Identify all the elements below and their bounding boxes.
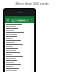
button[interactable]: Search cards bbox=[11, 19, 29, 22]
button[interactable] bbox=[5, 55, 34, 59]
staticText: More than 500 cards bbox=[15, 1, 49, 6]
button[interactable] bbox=[5, 43, 34, 47]
button[interactable] bbox=[5, 63, 34, 67]
button[interactable] bbox=[5, 39, 34, 43]
button[interactable] bbox=[5, 67, 34, 71]
button[interactable] bbox=[5, 35, 34, 39]
button[interactable] bbox=[5, 27, 34, 31]
button[interactable]: Menu bbox=[6, 18, 10, 22]
staticText: Search cards bbox=[15, 19, 28, 22]
button[interactable]: More than 500 cards bbox=[0, 0, 64, 7]
button[interactable]: More options bbox=[30, 19, 33, 22]
button[interactable] bbox=[5, 31, 34, 35]
button[interactable] bbox=[5, 23, 34, 27]
button[interactable] bbox=[5, 51, 34, 55]
button[interactable] bbox=[5, 47, 34, 51]
button[interactable] bbox=[5, 59, 34, 63]
